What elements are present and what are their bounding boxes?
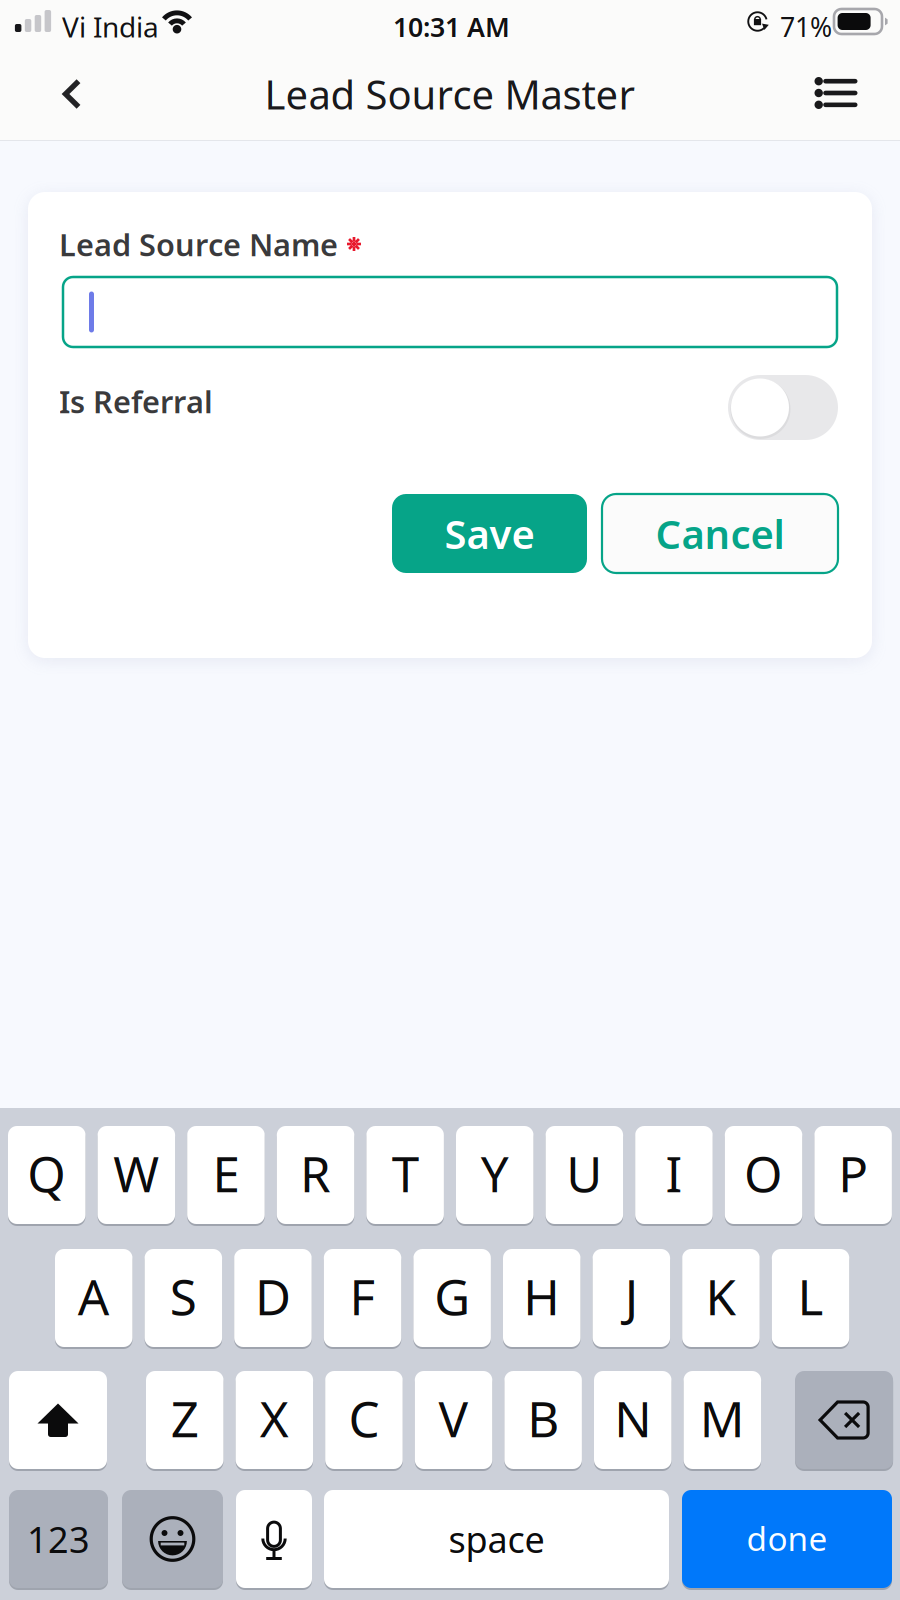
- button[interactable]: K: [682, 1248, 760, 1348]
- button[interactable]: Menu: [792, 47, 880, 135]
- staticText: T: [392, 1140, 419, 1206]
- button[interactable]: L: [772, 1248, 849, 1348]
- staticText: Z: [171, 1385, 199, 1451]
- staticText: Y: [481, 1140, 509, 1206]
- button[interactable]: W: [98, 1125, 175, 1225]
- staticText: D: [255, 1263, 291, 1329]
- staticText: Save: [444, 507, 534, 560]
- button[interactable]: Q: [8, 1125, 85, 1225]
- staticText: done: [746, 1516, 827, 1560]
- staticText: 123: [27, 1515, 90, 1563]
- staticText: Lead Source Name: [59, 224, 338, 265]
- button[interactable]: G: [413, 1248, 491, 1348]
- button[interactable]: N: [594, 1370, 671, 1470]
- button[interactable]: F: [324, 1248, 401, 1348]
- staticText: K: [705, 1263, 736, 1329]
- button[interactable]: V: [415, 1370, 492, 1470]
- button[interactable]: O: [725, 1125, 802, 1225]
- button[interactable]: Save: [392, 494, 587, 573]
- staticText: N: [614, 1385, 651, 1451]
- staticText: Lead Source Master: [264, 67, 635, 120]
- staticText: S: [170, 1263, 197, 1329]
- staticText: W: [113, 1140, 159, 1206]
- button[interactable]: R: [277, 1125, 354, 1225]
- staticText: H: [523, 1263, 560, 1329]
- button[interactable]: space: [324, 1489, 669, 1589]
- staticText: X: [260, 1385, 289, 1451]
- button[interactable]: 123: [9, 1489, 108, 1589]
- button[interactable]: Y: [456, 1125, 533, 1225]
- button[interactable]: Z: [146, 1370, 223, 1470]
- staticText: space: [448, 1515, 544, 1563]
- staticText: F: [349, 1263, 375, 1329]
- staticText: Is Referral: [59, 381, 213, 422]
- staticText: L: [798, 1263, 824, 1329]
- staticText: B: [527, 1385, 559, 1451]
- button[interactable]: Delete: [795, 1370, 893, 1470]
- button[interactable]: done: [682, 1489, 892, 1589]
- staticText: I: [665, 1140, 682, 1206]
- staticText: M: [700, 1385, 745, 1451]
- staticText: U: [566, 1140, 602, 1206]
- button[interactable]: Back: [28, 50, 116, 138]
- staticText: E: [212, 1140, 239, 1206]
- staticText: O: [744, 1140, 783, 1206]
- button[interactable]: Dictation: [236, 1489, 312, 1589]
- button[interactable]: M: [684, 1370, 761, 1470]
- button[interactable]: E: [187, 1125, 265, 1225]
- staticText: 10:31 AM: [393, 9, 510, 44]
- staticText: J: [625, 1263, 638, 1329]
- button[interactable]: B: [504, 1370, 582, 1470]
- staticText: R: [300, 1140, 331, 1206]
- staticText: C: [348, 1385, 379, 1451]
- button[interactable]: Is Referral: [728, 375, 838, 440]
- button[interactable]: A: [55, 1248, 132, 1348]
- button[interactable]: D: [234, 1248, 312, 1348]
- button[interactable]: T: [366, 1125, 444, 1225]
- button[interactable]: H: [503, 1248, 580, 1348]
- button[interactable]: S: [145, 1248, 222, 1348]
- staticText: A: [78, 1263, 110, 1329]
- button[interactable]: I: [635, 1125, 713, 1225]
- staticText: P: [838, 1140, 868, 1206]
- staticText: V: [438, 1385, 468, 1451]
- button[interactable]: J: [593, 1248, 670, 1348]
- button[interactable]: Shift: [9, 1370, 107, 1470]
- staticText: G: [434, 1263, 470, 1329]
- staticText: 71%: [780, 9, 832, 44]
- staticText: Q: [27, 1140, 66, 1206]
- button[interactable]: C: [325, 1370, 403, 1470]
- staticText: Vi India: [62, 8, 159, 45]
- button[interactable]: Emoji: [122, 1489, 223, 1589]
- button[interactable]: P: [814, 1125, 892, 1225]
- button[interactable]: Cancel: [602, 494, 838, 573]
- button[interactable]: U: [546, 1125, 623, 1225]
- staticText: Cancel: [655, 507, 784, 560]
- button[interactable]: X: [236, 1370, 313, 1470]
